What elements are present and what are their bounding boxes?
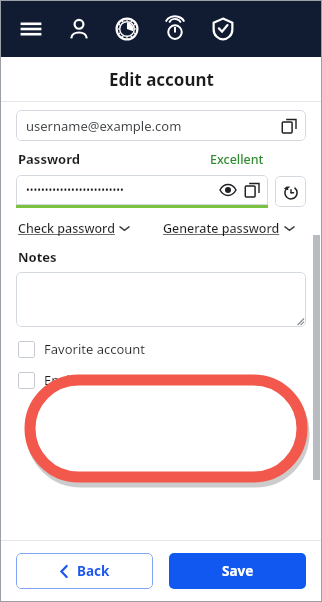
button[interactable]: Save bbox=[169, 553, 306, 589]
button[interactable] bbox=[16, 272, 306, 327]
button[interactable]: Copy password bbox=[240, 178, 264, 202]
staticText: Created at: 06/15/2022, 4:18 PM bbox=[0, 432, 322, 448]
button[interactable]: Generate password bbox=[163, 220, 294, 237]
staticText: Last update: 06/15/2022, 4:18 PM bbox=[0, 406, 322, 422]
staticText: Delete bbox=[141, 459, 182, 476]
staticText: Enable auto login bbox=[44, 371, 151, 389]
staticText: Generate password bbox=[163, 220, 280, 237]
staticText: Edit account bbox=[109, 68, 214, 91]
button[interactable]: username@example.com bbox=[16, 110, 306, 141]
button[interactable]: Delete bbox=[131, 457, 192, 478]
button[interactable]: Show password bbox=[216, 178, 240, 202]
button[interactable]: Accounts bbox=[64, 14, 94, 44]
button[interactable]: Security bbox=[208, 14, 238, 44]
staticText: Check password bbox=[18, 220, 115, 237]
staticText: •••••••••••••••••••••••••• bbox=[26, 183, 124, 197]
button[interactable]: Enable auto login bbox=[0, 371, 322, 389]
staticText: Back bbox=[77, 562, 110, 580]
staticText: Password bbox=[18, 150, 80, 168]
staticText: username@example.com bbox=[26, 117, 182, 135]
button[interactable]: Menu bbox=[16, 14, 46, 44]
button[interactable]: •••••••••••••••••••••••••• bbox=[16, 175, 268, 205]
button[interactable]: Copy username bbox=[276, 113, 302, 139]
button[interactable]: Password history bbox=[275, 176, 306, 207]
staticText: Notes bbox=[18, 248, 57, 266]
button[interactable]: Favorite account bbox=[0, 340, 322, 358]
button[interactable]: Dashboard bbox=[112, 14, 142, 44]
staticText: Save bbox=[222, 562, 254, 580]
button[interactable]: Back bbox=[16, 553, 153, 589]
button[interactable]: Check password bbox=[18, 220, 129, 237]
button[interactable]: Network bbox=[160, 14, 190, 44]
staticText: Excellent bbox=[210, 151, 264, 168]
staticText: Favorite account bbox=[44, 340, 146, 358]
